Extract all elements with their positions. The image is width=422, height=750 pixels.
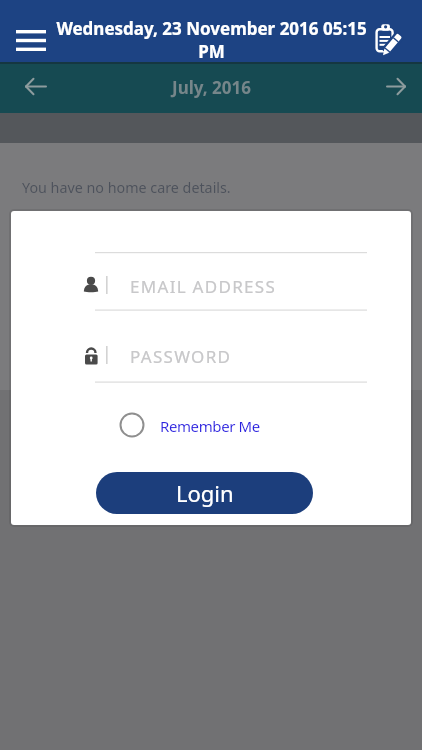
button[interactable] bbox=[12, 70, 60, 106]
staticText: Login bbox=[176, 478, 234, 508]
staticText: PASSWORD bbox=[130, 345, 232, 368]
button[interactable] bbox=[95, 310, 367, 381]
staticText: Wednesday, 23 November 2016 05:15 bbox=[56, 17, 367, 40]
button[interactable] bbox=[362, 16, 412, 60]
staticText: EMAIL ADDRESS bbox=[130, 275, 277, 298]
staticText: July, 2016 bbox=[172, 76, 251, 99]
staticText: PM bbox=[198, 40, 225, 62]
button[interactable]: Login bbox=[96, 472, 313, 514]
staticText: Remember Me bbox=[160, 416, 260, 436]
button[interactable] bbox=[8, 22, 54, 58]
button[interactable] bbox=[362, 70, 410, 106]
button[interactable]: Remember Me bbox=[115, 407, 275, 443]
button[interactable] bbox=[95, 253, 367, 309]
staticText: You have no home care details. bbox=[22, 178, 231, 197]
